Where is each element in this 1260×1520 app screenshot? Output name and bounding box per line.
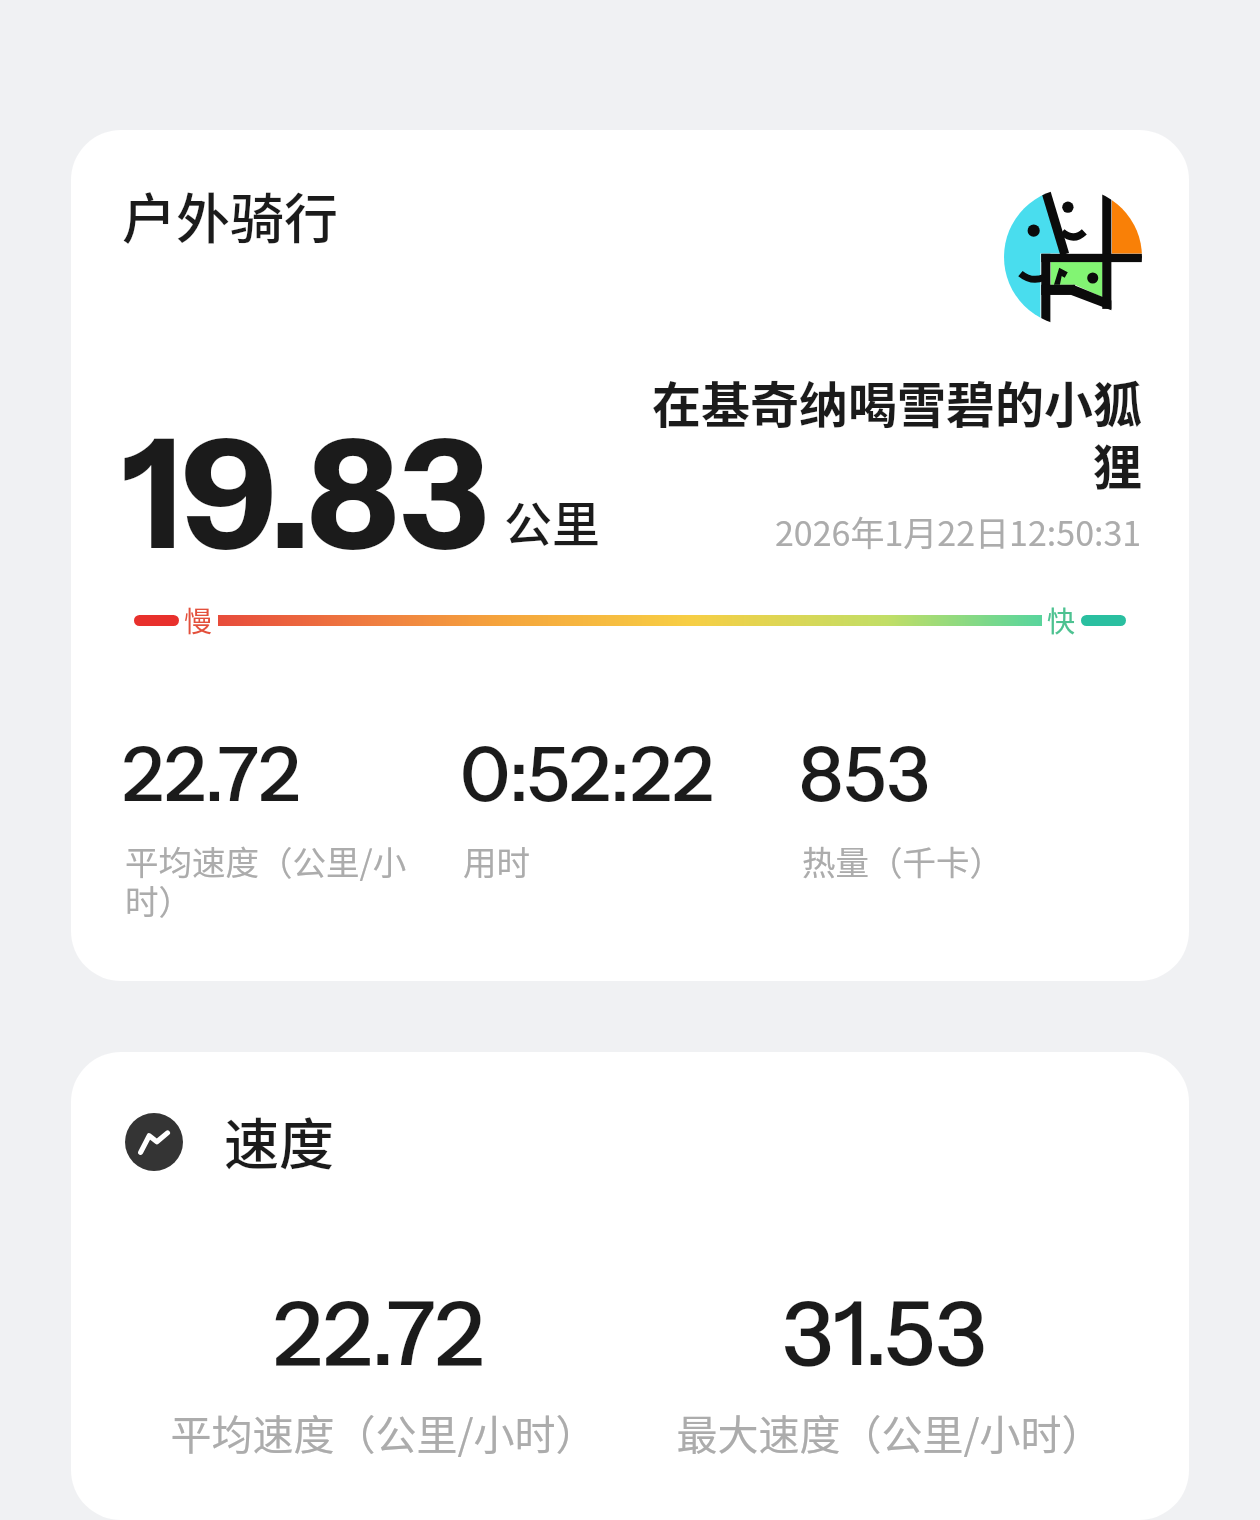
staticText: 最大速度（公里/小时） — [676, 1402, 1103, 1461]
staticText: 在基奇纳喝雪碧的小狐狸 — [648, 366, 1142, 499]
other: User avatar — [1004, 188, 1142, 326]
staticText: 快 — [1047, 600, 1076, 641]
staticText: 公里 — [504, 486, 601, 556]
staticText: 户外骑行 — [122, 176, 338, 254]
staticText: 853 — [799, 728, 930, 820]
button[interactable]: 速度 — [71, 1052, 1189, 1520]
staticText: 0:52:22 — [460, 728, 714, 820]
staticText: 平均速度（公里/小时） — [125, 836, 425, 924]
staticText: 用时 — [463, 836, 530, 885]
staticText: 22.72 — [122, 728, 300, 820]
button[interactable]: User avatar — [71, 130, 1189, 981]
staticText: 22.72 — [273, 1279, 484, 1388]
staticText: 2026年1月22日12:50:31 — [775, 507, 1142, 556]
staticText: 平均速度（公里/小时） — [170, 1402, 597, 1461]
staticText: 31.53 — [782, 1279, 987, 1388]
staticText: 热量（千卡） — [802, 836, 1003, 885]
staticText: 19.83 — [123, 401, 489, 586]
staticText: 慢 — [184, 600, 213, 641]
staticText: 速度 — [224, 1100, 335, 1180]
